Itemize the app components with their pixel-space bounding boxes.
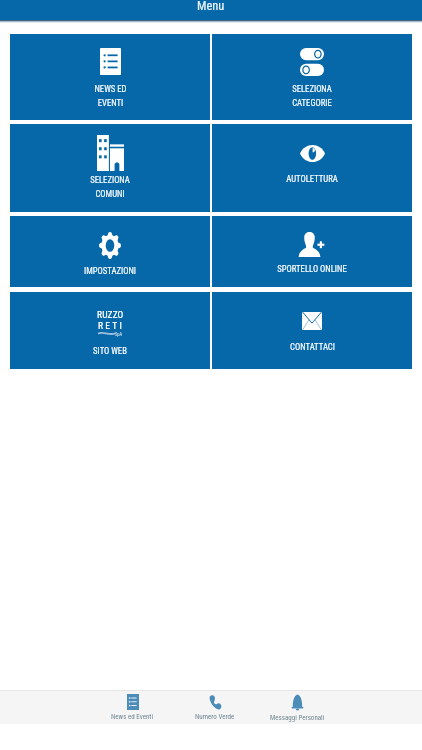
staticText: IMPOSTAZIONI: [84, 266, 136, 276]
button[interactable]: Numero Verde: [174, 691, 256, 724]
button[interactable]: NEWS ED EVENTI: [10, 34, 210, 120]
staticText: Messaggi Personali: [270, 714, 325, 722]
button[interactable]: SELEZIONA COMUNI: [10, 124, 210, 212]
button[interactable]: IMPOSTAZIONI: [10, 216, 210, 287]
staticText: NEWS ED EVENTI: [94, 84, 127, 108]
button[interactable]: CONTATTACI: [212, 292, 412, 369]
staticText: Numero Verde: [195, 713, 235, 721]
staticText: SELEZIONA CATEGORIE: [292, 84, 332, 108]
staticText: CONTATTACI: [290, 342, 335, 352]
button[interactable]: Messaggi Personali: [256, 691, 338, 724]
staticText: AUTOLETTURA: [286, 174, 338, 184]
button[interactable]: AUTOLETTURA: [212, 124, 412, 212]
staticText: RUZZO: [97, 309, 124, 320]
button[interactable]: SPORTELLO ONLINE: [212, 216, 412, 287]
button[interactable]: RUZZO: [10, 292, 210, 369]
staticText: SPORTELLO ONLINE: [277, 264, 347, 274]
staticText: News ed Eventi: [111, 713, 154, 721]
button[interactable]: News ed Eventi: [91, 691, 174, 724]
staticText: SITO WEB: [93, 346, 127, 356]
staticText: SpA: [115, 332, 123, 337]
staticText: Menu: [197, 0, 225, 13]
staticText: SELEZIONA COMUNI: [90, 175, 130, 199]
staticText: RETI: [98, 320, 124, 331]
button[interactable]: SELEZIONA CATEGORIE: [212, 34, 412, 120]
